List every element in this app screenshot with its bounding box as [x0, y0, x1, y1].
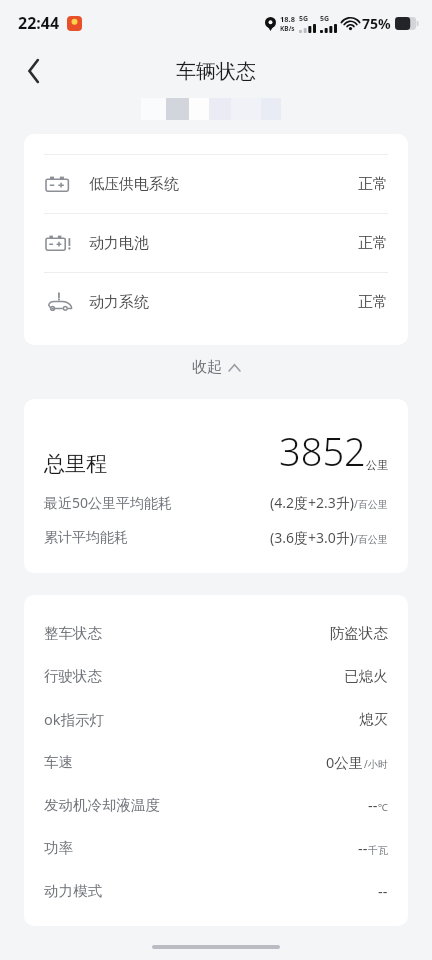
button[interactable]: 车速	[24, 740, 408, 783]
staticText: 已熄火	[344, 667, 388, 685]
staticText: 动力模式	[44, 882, 102, 900]
staticText: --	[368, 795, 378, 815]
staticText: 0公里	[326, 752, 364, 772]
staticText: 防盗状态	[330, 624, 388, 642]
staticText: --	[358, 838, 368, 858]
button[interactable]: 返回	[12, 49, 56, 93]
staticText: 动力电池	[89, 234, 149, 253]
button[interactable]: 功率	[24, 826, 408, 869]
button[interactable]: 整车状态	[24, 611, 408, 654]
staticText: 18.8	[280, 14, 295, 24]
staticText: (4.2度+2.3升)	[270, 493, 354, 512]
staticText: 75%	[362, 14, 391, 33]
staticText: 低压供电系统	[89, 175, 179, 194]
staticText: 整车状态	[44, 624, 102, 642]
staticText: 车辆状态	[176, 59, 256, 84]
staticText: 5G	[320, 14, 330, 24]
staticText: 最近50公里平均能耗	[44, 493, 173, 512]
button[interactable]: 发动机冷却液温度	[24, 783, 408, 826]
staticText: 行驶状态	[44, 667, 102, 685]
button[interactable]: 收起	[178, 352, 254, 383]
staticText: ok指示灯	[44, 709, 105, 729]
staticText: 正常	[358, 175, 388, 194]
staticText: /百公里	[354, 532, 388, 546]
button[interactable]: 行驶状态	[24, 654, 408, 697]
button[interactable]: 动力系统	[24, 273, 408, 331]
staticText: 22:44	[18, 12, 60, 34]
staticText: 总里程	[44, 451, 107, 477]
staticText: --	[378, 881, 388, 901]
staticText: 正常	[358, 293, 388, 312]
staticText: /小时	[364, 757, 388, 771]
staticText: 功率	[44, 839, 73, 857]
staticText: /百公里	[354, 497, 388, 511]
staticText: 累计平均能耗	[44, 529, 128, 547]
button[interactable]: 低压供电系统	[24, 155, 408, 213]
staticText: 熄灭	[359, 710, 388, 728]
staticText: 发动机冷却液温度	[44, 796, 160, 814]
staticText: 动力系统	[89, 293, 149, 312]
staticText: 公里	[366, 458, 388, 472]
staticText: ℃	[378, 800, 388, 814]
staticText: 正常	[358, 234, 388, 253]
staticText: (3.6度+3.0升)	[270, 528, 354, 547]
staticText: 车速	[44, 753, 73, 771]
staticText: KB/s	[280, 24, 295, 33]
button[interactable]: ok指示灯	[24, 697, 408, 740]
button[interactable]: 动力模式	[24, 869, 408, 912]
staticText: 3852	[279, 425, 366, 477]
staticText: 5G	[299, 14, 309, 24]
button[interactable]: 动力电池	[24, 214, 408, 272]
staticText: 收起	[192, 358, 222, 377]
staticText: 千瓦	[368, 844, 388, 857]
